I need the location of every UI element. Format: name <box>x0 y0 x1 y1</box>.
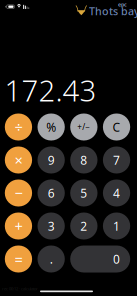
button[interactable]: + <box>5 212 32 239</box>
button[interactable]: 8 <box>70 146 97 173</box>
staticText: 5 <box>80 185 87 201</box>
staticText: ÷ <box>14 117 22 137</box>
staticText: × <box>14 150 22 170</box>
button[interactable]: ÷ <box>5 113 32 140</box>
staticText: − <box>14 183 22 203</box>
button[interactable]: % <box>37 113 65 140</box>
staticText: rec 00:12 · calculator <box>2 286 38 291</box>
button[interactable]: 1 <box>103 212 130 239</box>
staticText: C <box>113 119 121 135</box>
staticText: = <box>14 249 22 269</box>
staticText: . <box>50 251 53 267</box>
button[interactable]: 2 <box>70 212 97 239</box>
button[interactable]: . <box>37 245 65 272</box>
staticText: 8 <box>80 152 87 168</box>
staticText: 4 <box>113 185 120 201</box>
staticText: +/− <box>77 122 90 132</box>
staticText: % <box>46 119 56 135</box>
button[interactable]: 6 <box>37 179 65 206</box>
staticText: + <box>14 216 22 236</box>
staticText: 172.43 <box>4 70 96 109</box>
staticText: 2 <box>80 218 87 234</box>
staticText: Thots bay <box>89 4 137 18</box>
staticText: 6 <box>48 185 55 201</box>
staticText: 9 <box>48 152 55 168</box>
button[interactable]: 5 <box>70 179 97 206</box>
button[interactable]: 9 <box>37 146 65 173</box>
staticText: 3 <box>48 218 55 234</box>
button[interactable]: 7 <box>103 146 130 173</box>
button[interactable]: × <box>5 146 32 173</box>
button[interactable]: = <box>5 245 32 272</box>
button[interactable]: 0 <box>70 245 130 272</box>
staticText: 0 <box>113 251 120 267</box>
staticText: 7 <box>113 152 120 168</box>
button[interactable]: − <box>5 179 32 206</box>
staticText: epc <box>118 1 127 8</box>
staticText: 1 <box>113 218 120 234</box>
button[interactable]: 3 <box>37 212 65 239</box>
button[interactable]: C <box>103 113 130 140</box>
button[interactable]: 4 <box>103 179 130 206</box>
button[interactable]: +/− <box>70 113 97 140</box>
